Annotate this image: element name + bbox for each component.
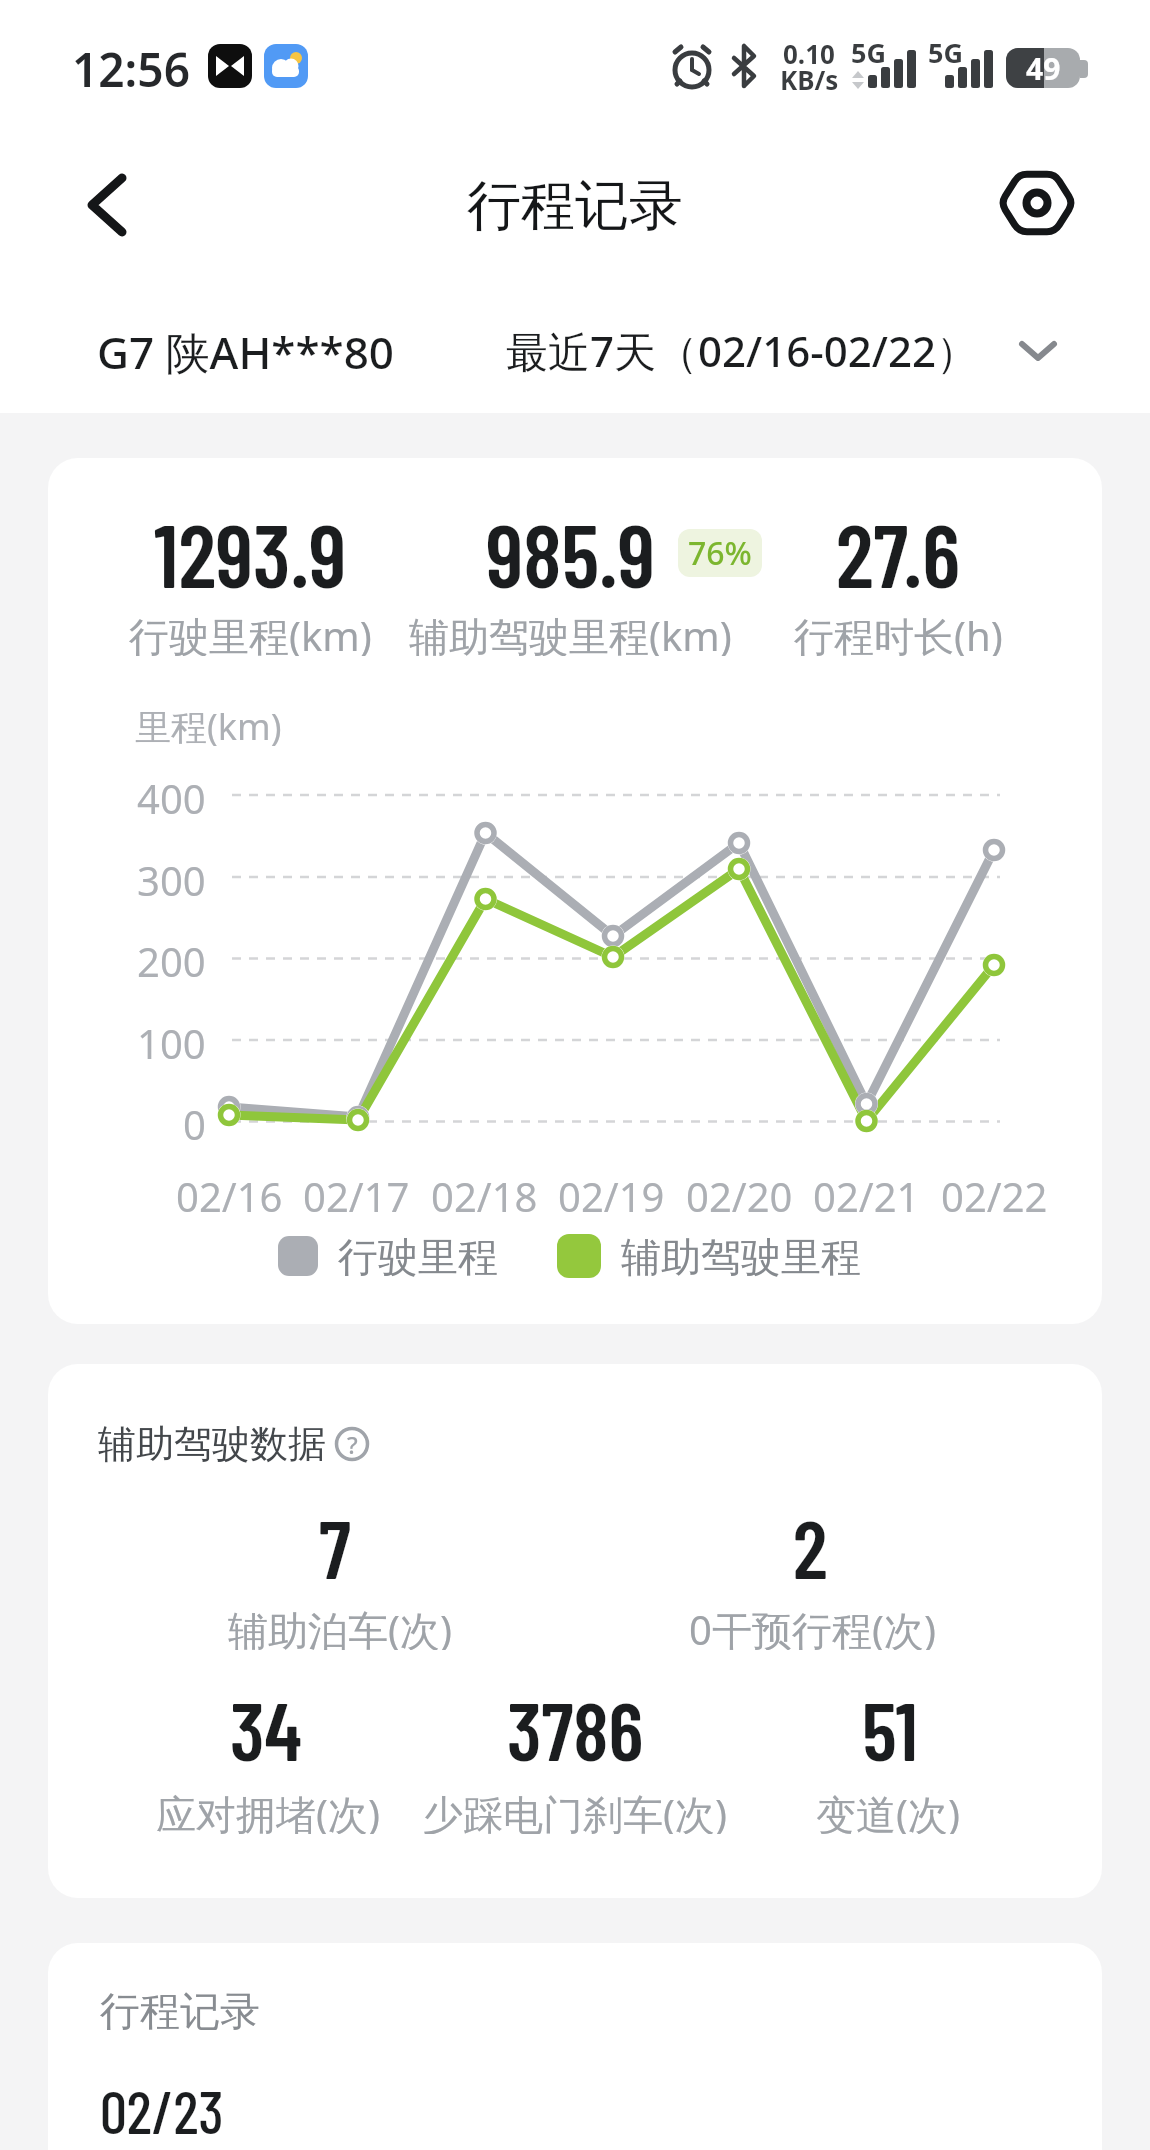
staticText: 辅助驾驶数据 <box>98 1420 326 1468</box>
staticText: 27.6 <box>836 500 960 604</box>
staticText: 行程记录 <box>467 172 683 240</box>
staticText: 76% <box>688 531 752 575</box>
staticText: 3786 <box>507 1680 644 1777</box>
staticText: 行驶里程(km) <box>129 608 372 656</box>
staticText: 100 <box>137 1016 206 1064</box>
staticText: 应对拥堵(次) <box>156 1786 380 1834</box>
staticText: 34 <box>230 1680 302 1777</box>
staticText: 0干预行程(次) <box>689 1602 936 1650</box>
staticText: 0.10 <box>783 36 835 66</box>
staticText: 辅助驾驶里程(km) <box>409 608 732 656</box>
staticText: 7 <box>319 1498 351 1595</box>
staticText: 行程时长(h) <box>794 608 1003 656</box>
staticText: 少踩电门刹车(次) <box>423 1786 727 1834</box>
staticText: 400 <box>137 771 206 819</box>
staticText: 49 <box>1026 48 1061 88</box>
staticText: 200 <box>137 934 206 982</box>
button[interactable]: 最近7天（02/16-02/22） <box>500 316 1060 384</box>
button[interactable]: 辅助驾驶数据 <box>98 1420 370 1468</box>
staticText: G7 陕AH***80 <box>97 322 394 378</box>
staticText: 02/19 <box>558 1169 665 1217</box>
staticText: 5G <box>851 34 886 64</box>
staticText: 5G <box>928 34 963 64</box>
staticText: 02/18 <box>431 1169 538 1217</box>
staticText: ? <box>347 1428 358 1461</box>
staticText: 985.9 <box>486 500 655 604</box>
button[interactable]: 行驶里程 <box>278 1232 538 1280</box>
staticText: 02/16 <box>176 1169 283 1217</box>
staticText: KB/s <box>780 62 839 92</box>
staticText: 行驶里程 <box>338 1232 498 1280</box>
staticText: 02/20 <box>686 1169 793 1217</box>
staticText: 300 <box>137 853 206 901</box>
staticText: 2 <box>793 1498 828 1595</box>
button[interactable] <box>995 162 1079 246</box>
staticText: 辅助驾驶里程 <box>621 1232 861 1280</box>
staticText: 辅助泊车(次) <box>228 1602 452 1650</box>
button[interactable]: 02/23 <box>100 2074 1060 2138</box>
staticText: 02/23 <box>100 2074 224 2138</box>
staticText: 02/22 <box>941 1169 1048 1217</box>
staticText: 行程记录 <box>100 1986 260 2034</box>
staticText: 最近7天（02/16-02/22） <box>506 322 979 379</box>
staticText: 变道(次) <box>816 1786 960 1834</box>
staticText: 02/21 <box>813 1169 920 1217</box>
staticText: 0 <box>183 1097 206 1145</box>
staticText: 1293.9 <box>154 500 347 604</box>
staticText: 里程(km) <box>135 702 282 750</box>
staticText: 12:56 <box>72 38 190 94</box>
button[interactable] <box>60 160 150 250</box>
staticText: 02/17 <box>303 1169 410 1217</box>
button[interactable]: 辅助驾驶里程 <box>557 1232 887 1280</box>
staticText: 51 <box>862 1680 918 1777</box>
